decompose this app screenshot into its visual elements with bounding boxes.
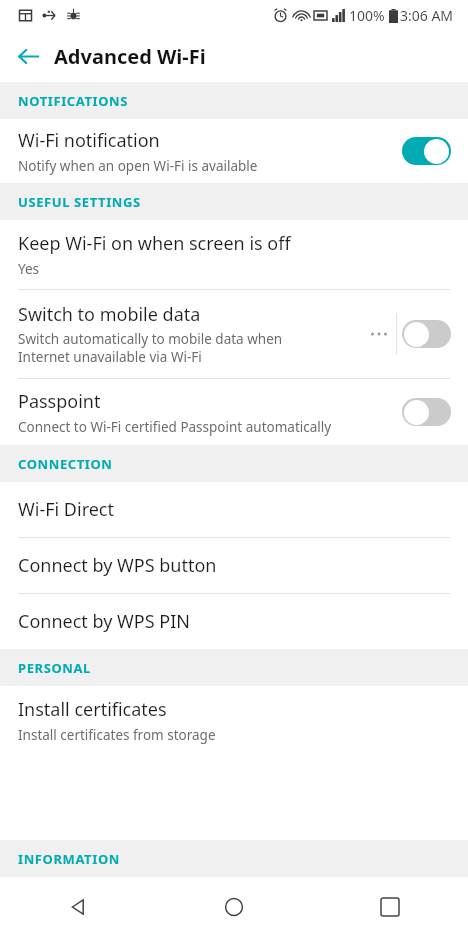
button[interactable]: Wi-Fi notification	[0, 119, 468, 183]
staticText: Notify when an open Wi-Fi is available	[18, 157, 258, 175]
button[interactable]: Switch to mobile data	[18, 302, 366, 366]
button[interactable]: More options	[366, 312, 392, 356]
staticText: Passpoint	[18, 389, 101, 414]
button[interactable]: Back	[8, 36, 48, 76]
staticText: Connect to Wi-Fi certified Passpoint aut…	[18, 418, 332, 436]
staticText: Switch to mobile data	[18, 302, 201, 327]
staticText: 3:06 AM	[400, 6, 454, 25]
button[interactable]: Back	[0, 877, 156, 937]
button[interactable]: Off	[401, 319, 452, 349]
staticText: Install certificates from storage	[18, 726, 216, 744]
staticText: Switch automatically to mobile data when	[18, 330, 283, 348]
staticText: CONNECTION	[18, 455, 113, 473]
button[interactable]: On	[401, 136, 452, 166]
button[interactable]: Off	[401, 397, 452, 427]
button[interactable]: Passpoint	[0, 379, 468, 445]
staticText: Wi-Fi notification	[18, 128, 160, 153]
button[interactable]: Keep Wi-Fi on when screen is off	[0, 220, 468, 289]
staticText: NOTIFICATIONS	[18, 92, 129, 110]
button[interactable]: Wi-Fi Direct	[0, 482, 468, 537]
staticText: Wi-Fi Direct	[18, 497, 114, 522]
staticText: INFORMATION	[18, 850, 120, 868]
button[interactable]: Connect by WPS PIN	[0, 594, 468, 649]
button[interactable]: Install certificates	[0, 686, 468, 754]
staticText: PERSONAL	[18, 659, 91, 677]
staticText: Install certificates	[18, 697, 167, 722]
staticText: Connect by WPS button	[18, 553, 217, 578]
button[interactable]: Recent apps	[312, 877, 468, 937]
staticText: USEFUL SETTINGS	[18, 193, 141, 211]
staticText: Yes	[18, 260, 40, 278]
staticText: Internet unavailable via Wi-Fi	[18, 348, 202, 366]
button[interactable]: Home	[156, 877, 312, 937]
button[interactable]: Connect by WPS button	[0, 538, 468, 593]
staticText: 100%	[349, 6, 385, 25]
staticText: Connect by WPS PIN	[18, 609, 190, 634]
staticText: Keep Wi-Fi on when screen is off	[18, 231, 291, 256]
staticText: Advanced Wi-Fi	[54, 43, 206, 70]
